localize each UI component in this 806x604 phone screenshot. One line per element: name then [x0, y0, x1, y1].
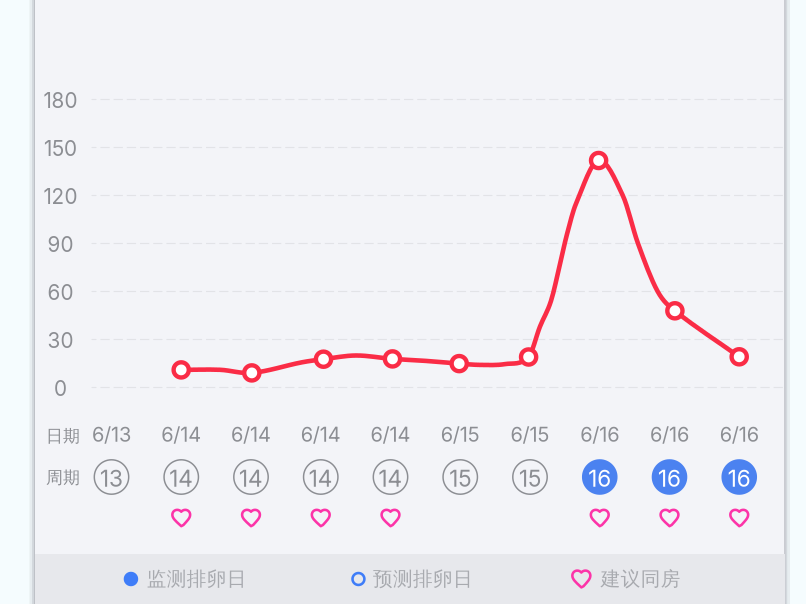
staticText: 16: [728, 465, 751, 492]
staticText: 14: [378, 465, 402, 492]
staticText: 6/14: [301, 422, 341, 447]
button[interactable]: 监测排卵日: [124, 567, 247, 591]
staticText: 监测排卵日: [147, 567, 247, 591]
staticText: 13: [100, 465, 123, 492]
staticText: 14: [169, 465, 193, 492]
staticText: 建议同房: [601, 567, 681, 591]
staticText: 90: [47, 232, 73, 257]
staticText: 0: [54, 376, 67, 401]
staticText: 日期: [46, 425, 80, 447]
staticText: 6/16: [720, 422, 759, 447]
staticText: 14: [309, 465, 333, 492]
staticText: 6/14: [161, 422, 201, 447]
staticText: 180: [43, 88, 77, 113]
staticText: 预测排卵日: [373, 567, 473, 591]
staticText: 6/15: [510, 422, 549, 447]
button[interactable]: 预测排卵日: [352, 567, 473, 591]
staticText: 30: [47, 328, 73, 353]
staticText: 150: [44, 136, 77, 161]
button[interactable]: 建议同房: [571, 567, 681, 591]
staticText: 16: [658, 465, 681, 492]
staticText: 6/14: [370, 422, 410, 447]
staticText: 14: [239, 465, 263, 492]
staticText: 16: [588, 465, 611, 492]
staticText: 6/13: [92, 422, 131, 447]
staticText: 60: [47, 280, 73, 305]
staticText: 120: [43, 184, 77, 209]
staticText: 6/16: [650, 422, 689, 447]
staticText: 周期: [46, 467, 80, 488]
staticText: 15: [449, 465, 471, 492]
staticText: 6/15: [441, 422, 480, 447]
staticText: 6/14: [231, 422, 271, 447]
staticText: 15: [519, 465, 541, 492]
staticText: 6/16: [580, 422, 619, 447]
